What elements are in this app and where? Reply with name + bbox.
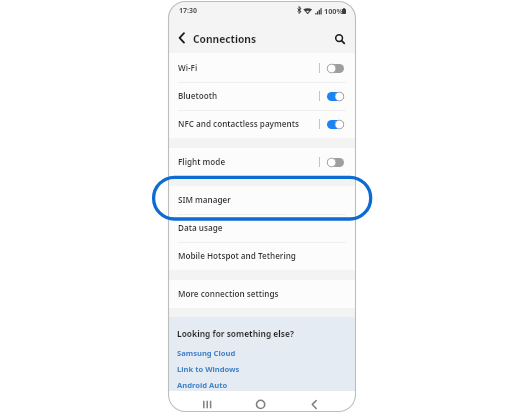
- staticText: 100%: [324, 6, 344, 16]
- button[interactable]: Bluetooth: [168, 82, 356, 110]
- button[interactable]: Mobile Hotspot and Tethering: [168, 242, 356, 270]
- button[interactable]: Link to Windows: [177, 363, 240, 375]
- staticText: Link to Windows: [177, 364, 240, 374]
- staticText: 17:30: [179, 6, 197, 16]
- button[interactable]: NFC and contactless payments: [168, 110, 356, 138]
- button[interactable]: Turn off: [327, 119, 344, 130]
- button[interactable]: Home: [248, 391, 274, 412]
- button[interactable]: Turn on: [327, 63, 344, 74]
- button[interactable]: Data usage: [168, 214, 356, 242]
- button[interactable]: Back: [171, 26, 191, 51]
- staticText: Bluetooth: [178, 90, 319, 101]
- button[interactable]: Android Auto: [177, 379, 228, 391]
- staticText: NFC and contactless payments: [178, 118, 319, 129]
- staticText: More connection settings: [178, 288, 279, 299]
- button[interactable]: Connections: [192, 26, 302, 51]
- button[interactable]: Search: [329, 27, 351, 51]
- button[interactable]: Recent apps: [194, 391, 220, 412]
- button[interactable]: More connection settings: [168, 280, 356, 308]
- button[interactable]: SIM manager: [168, 186, 356, 214]
- staticText: Mobile Hotspot and Tethering: [178, 250, 296, 261]
- staticText: SIM manager: [178, 194, 231, 205]
- button[interactable]: Samsung Cloud: [177, 347, 236, 359]
- staticText: Looking for something else?: [177, 328, 294, 339]
- staticText: Wi-Fi: [178, 62, 319, 73]
- staticText: Data usage: [178, 222, 223, 233]
- staticText: Samsung Cloud: [177, 348, 236, 358]
- staticText: Flight mode: [178, 156, 319, 167]
- staticText: Android Auto: [177, 380, 228, 390]
- staticText: Connections: [193, 32, 257, 46]
- button[interactable]: Wi-Fi: [168, 54, 356, 82]
- button[interactable]: Turn on: [327, 157, 344, 168]
- button[interactable]: Turn off: [327, 91, 344, 102]
- button[interactable]: Flight mode: [168, 148, 356, 176]
- button[interactable]: Back: [302, 391, 328, 412]
